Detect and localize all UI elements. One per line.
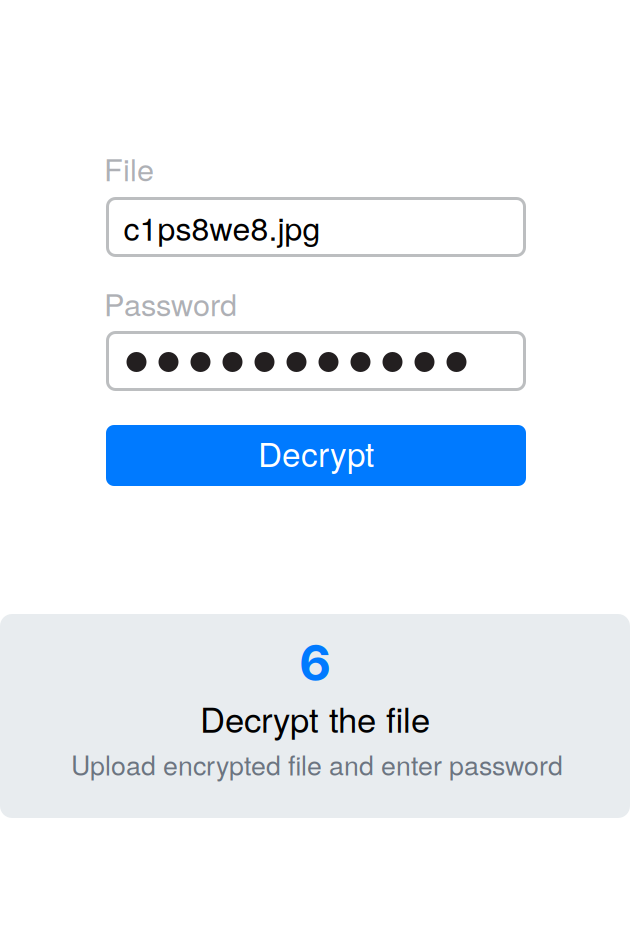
staticText: Upload encrypted file and enter password [71, 745, 563, 783]
button[interactable]: Password [106, 331, 526, 391]
staticText: Decrypt [258, 429, 374, 476]
staticText: File [104, 146, 154, 190]
button[interactable]: Decrypt [106, 425, 526, 486]
staticText: Decrypt the file [200, 693, 430, 743]
staticText: Password [104, 281, 237, 325]
button[interactable]: c1ps8we8.jpg [106, 197, 526, 257]
staticText: 6 [299, 633, 331, 693]
staticText: c1ps8we8.jpg [123, 204, 320, 250]
